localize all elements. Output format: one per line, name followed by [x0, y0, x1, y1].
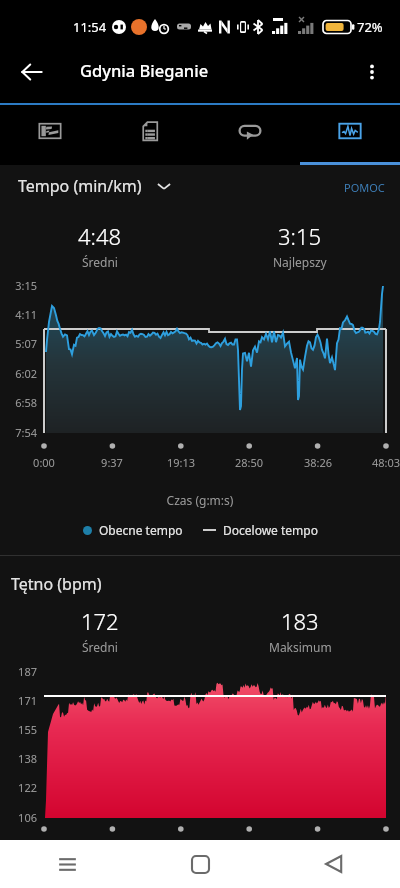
- button[interactable]: Map: [0, 105, 100, 165]
- button[interactable]: Charts: [300, 105, 400, 165]
- button[interactable]: Back: [267, 840, 400, 888]
- staticText: 0:00: [14, 455, 74, 470]
- staticText: Najlepszy: [273, 254, 327, 270]
- staticText: 72%: [357, 18, 383, 36]
- button[interactable]: Tempo (min/km): [14, 171, 176, 201]
- staticText: 19:13: [151, 455, 211, 470]
- staticText: Maksimum: [269, 639, 332, 655]
- staticText: 48:03: [356, 455, 400, 470]
- staticText: Średni: [82, 639, 118, 655]
- staticText: 155: [0, 722, 37, 737]
- staticText: 4:48: [78, 221, 122, 251]
- staticText: 138: [0, 751, 37, 766]
- staticText: Docelowe tempo: [223, 522, 318, 538]
- staticText: Gdynia Bieganie: [80, 59, 209, 81]
- staticText: 122: [0, 780, 37, 795]
- staticText: 187: [0, 664, 37, 679]
- staticText: 5:07: [0, 336, 37, 351]
- staticText: 183: [281, 606, 319, 636]
- button[interactable]: Laps: [200, 105, 300, 165]
- staticText: 7:54: [0, 425, 37, 440]
- staticText: Średni: [82, 254, 118, 270]
- staticText: 3:15: [0, 278, 37, 293]
- button[interactable]: Details: [100, 105, 200, 165]
- staticText: 6:58: [0, 395, 37, 410]
- staticText: POMOC: [344, 180, 385, 195]
- staticText: 171: [0, 693, 37, 708]
- staticText: 11:54: [73, 18, 107, 36]
- staticText: 3:15: [278, 221, 322, 251]
- staticText: 172: [81, 606, 119, 636]
- staticText: 6:02: [0, 366, 37, 381]
- staticText: Tętno (bpm): [11, 573, 102, 595]
- staticText: Tempo (min/km): [18, 175, 142, 197]
- staticText: 106: [0, 810, 37, 825]
- staticText: Obecne tempo: [99, 522, 183, 538]
- button[interactable]: More options: [348, 48, 396, 96]
- button[interactable]: POMOC: [340, 176, 389, 199]
- staticText: 38:26: [288, 455, 348, 470]
- button[interactable]: Recent apps: [0, 840, 134, 888]
- button[interactable]: Back: [4, 44, 60, 100]
- staticText: 9:37: [82, 455, 142, 470]
- staticText: 28:50: [219, 455, 279, 470]
- staticText: 4:11: [0, 307, 37, 322]
- staticText: Czas (g:m:s): [0, 492, 400, 508]
- button[interactable]: Home: [134, 840, 267, 888]
